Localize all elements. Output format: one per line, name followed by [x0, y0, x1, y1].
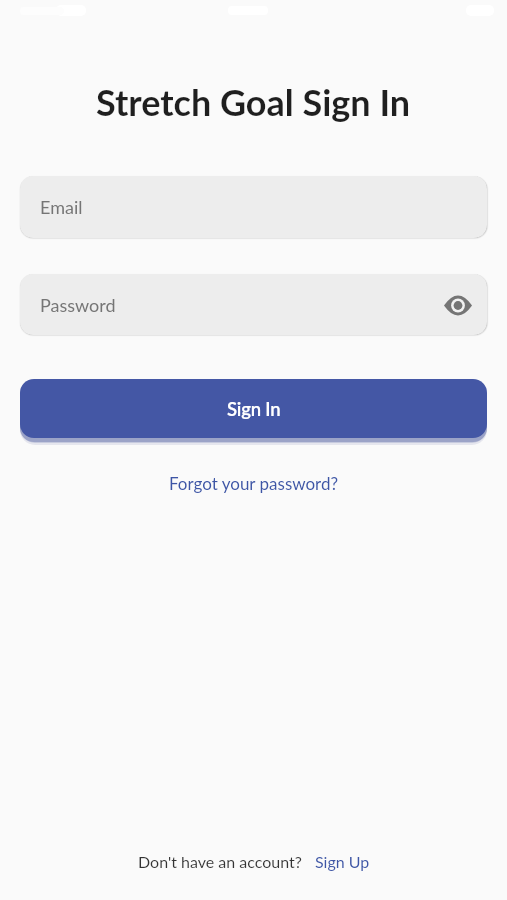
button[interactable]: Forgot your password? — [169, 473, 339, 493]
button[interactable] — [443, 290, 473, 320]
staticText: Sign In — [227, 398, 281, 420]
staticText: Stretch Goal Sign In — [96, 80, 411, 123]
button[interactable]: Sign In — [20, 379, 487, 438]
button[interactable]: Password — [20, 274, 487, 335]
staticText: Don't have an account? — [138, 852, 302, 871]
button[interactable]: Sign Up — [315, 852, 370, 871]
staticText: Email — [40, 196, 83, 218]
staticText: Password — [40, 294, 116, 316]
button[interactable]: Email — [20, 176, 487, 238]
